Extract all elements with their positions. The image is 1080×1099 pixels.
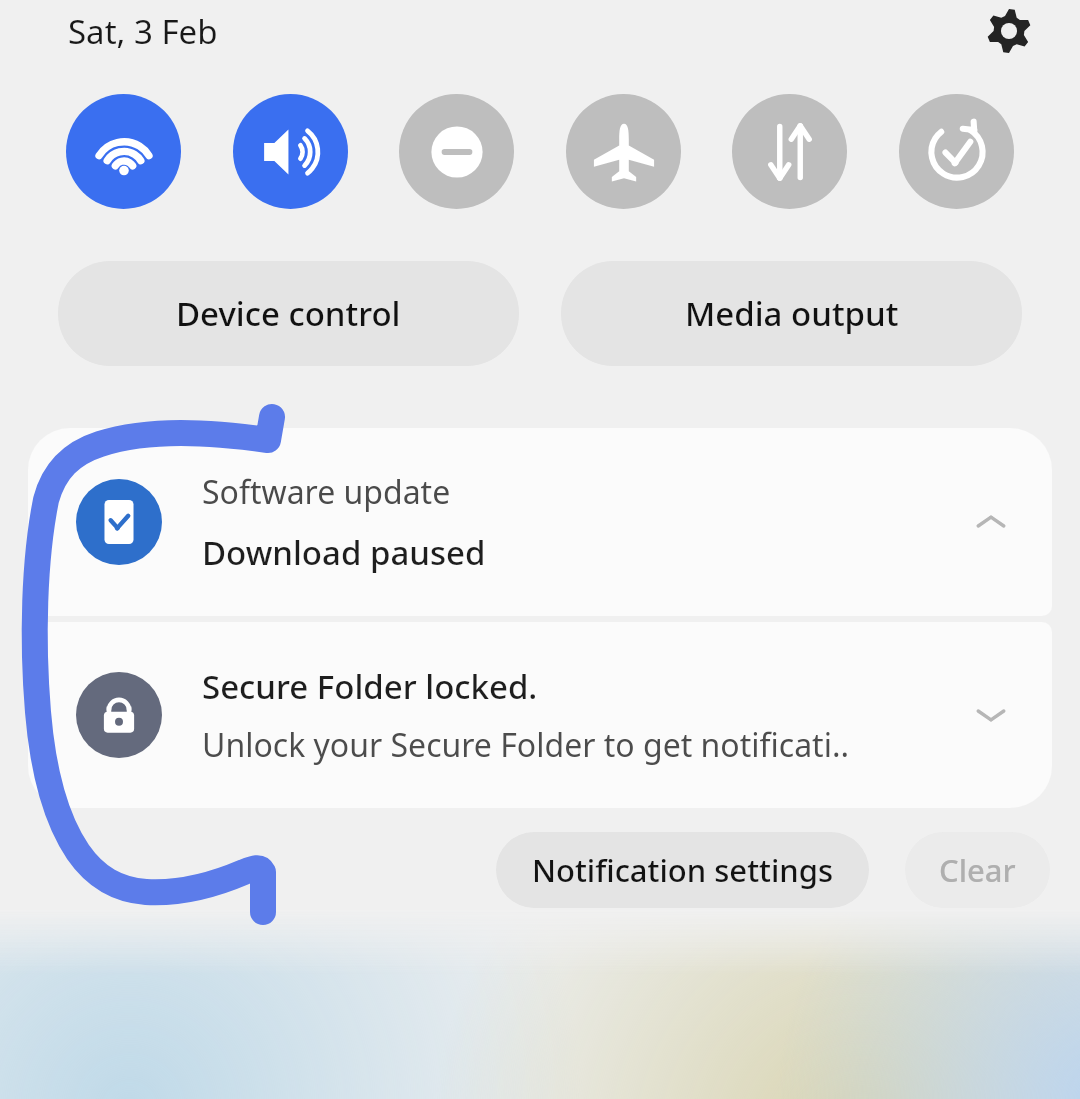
- button[interactable]: Notification settings: [496, 832, 869, 908]
- staticText: Media output: [685, 291, 899, 336]
- staticText: Download paused: [202, 530, 486, 575]
- button[interactable]: Clear: [905, 832, 1050, 908]
- button[interactable]: Software update: [28, 428, 1052, 616]
- button[interactable]: Auto rotate: [899, 94, 1014, 209]
- staticText: Device control: [176, 291, 401, 336]
- button[interactable]: Sound: [233, 94, 348, 209]
- button[interactable]: Secure Folder locked.: [28, 622, 1052, 808]
- staticText: Unlock your Secure Folder to get notific…: [202, 723, 850, 767]
- button[interactable]: Expand: [952, 676, 1030, 754]
- button[interactable]: Airplane mode: [566, 94, 681, 209]
- staticText: Clear: [939, 849, 1016, 891]
- staticText: Sat, 3 Feb: [68, 9, 218, 54]
- button[interactable]: Mobile data: [732, 94, 847, 209]
- staticText: Software update: [202, 470, 451, 514]
- button[interactable]: Do not disturb: [399, 94, 514, 209]
- button[interactable]: Media output: [561, 261, 1022, 366]
- button[interactable]: Settings: [972, 0, 1046, 62]
- button[interactable]: Wi-Fi: [66, 94, 181, 209]
- button[interactable]: Device control: [58, 261, 519, 366]
- button[interactable]: Collapse: [952, 483, 1030, 561]
- staticText: Notification settings: [532, 849, 833, 891]
- staticText: Secure Folder locked.: [202, 664, 538, 709]
